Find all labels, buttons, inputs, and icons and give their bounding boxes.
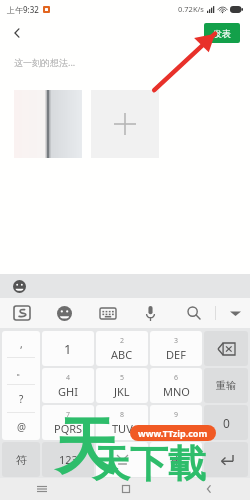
staticText: 9 — [174, 410, 179, 420]
staticText: 8 — [120, 410, 125, 420]
button[interactable]: 中 — [150, 442, 202, 477]
staticText: 7 — [66, 410, 71, 420]
button[interactable]: 0 — [204, 405, 248, 440]
staticText: 2 — [120, 336, 125, 346]
button[interactable]: Collapse keyboard — [215, 298, 250, 328]
button[interactable]: Voice input — [129, 298, 172, 328]
button[interactable]: Home — [84, 478, 167, 500]
button[interactable]: Recents — [0, 478, 84, 500]
staticText: 6 — [174, 373, 179, 383]
staticText: 0 — [223, 415, 230, 431]
staticText: ABC — [111, 347, 133, 362]
staticText: MNO — [163, 384, 190, 399]
staticText: DEF — [166, 347, 186, 362]
button[interactable]: 发表 — [204, 23, 240, 43]
staticText: 5 — [120, 373, 125, 383]
staticText: 3 — [174, 336, 179, 346]
button[interactable]: 。 — [2, 358, 40, 384]
button[interactable]: Backspace — [204, 331, 248, 366]
button[interactable]: 4 — [42, 368, 94, 403]
button[interactable]: 8 — [96, 405, 148, 440]
staticText: , — [20, 337, 23, 351]
staticText: @ — [17, 420, 26, 434]
staticText: 发表 — [213, 28, 231, 39]
staticText: 重输 — [216, 379, 236, 392]
staticText: 1 — [64, 340, 72, 358]
button[interactable]: 6 — [150, 368, 202, 403]
button[interactable]: Emoticons — [43, 298, 86, 328]
button[interactable]: Space — [96, 442, 148, 477]
button[interactable]: 5 — [96, 368, 148, 403]
staticText: WXYZ — [161, 421, 191, 436]
staticText: 0.72K/s — [178, 4, 204, 14]
staticText: TUV — [112, 421, 133, 436]
staticText: 符 — [16, 453, 27, 467]
button[interactable]: Emoji — [9, 276, 29, 296]
button[interactable]: Search — [172, 298, 215, 328]
staticText: www.TTzip.com — [138, 427, 208, 439]
button[interactable]: 7 — [42, 405, 94, 440]
button[interactable]: , — [2, 331, 40, 357]
staticText: 天下載 — [92, 440, 206, 488]
staticText: GHI — [58, 384, 78, 399]
button[interactable]: Sogou input — [0, 298, 43, 328]
button[interactable]: 9 — [150, 405, 202, 440]
staticText: ? — [19, 392, 24, 406]
button[interactable]: Keyboard layout — [86, 298, 129, 328]
staticText: 上午9:32 — [7, 4, 39, 15]
button[interactable]: Back — [4, 20, 30, 46]
button[interactable]: ? — [2, 385, 40, 412]
staticText: 这一刻的想法... — [14, 56, 76, 68]
staticText: 中 — [171, 453, 182, 467]
staticText: 。 — [16, 365, 26, 378]
staticText: 天 — [55, 408, 117, 486]
button[interactable]: 重输 — [204, 368, 248, 403]
staticText: 123 — [59, 452, 78, 467]
button[interactable]: 123 — [42, 442, 94, 477]
button[interactable]: Back — [167, 478, 250, 500]
button[interactable]: 1 — [42, 331, 94, 366]
staticText: PQRS — [54, 421, 83, 436]
button[interactable]: Enter — [204, 442, 248, 477]
staticText: 4 — [66, 373, 71, 383]
button[interactable]: 3 — [150, 331, 202, 366]
button[interactable]: 符 — [2, 442, 40, 477]
button[interactable]: 2 — [96, 331, 148, 366]
staticText: JKL — [114, 384, 130, 399]
button[interactable]: @ — [2, 413, 40, 440]
button[interactable]: Add photo — [91, 90, 159, 158]
button[interactable]: Selected photo — [14, 90, 82, 158]
